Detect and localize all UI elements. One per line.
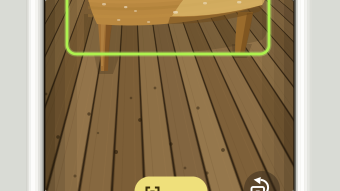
button[interactable]: Reset capture bbox=[244, 171, 280, 191]
button[interactable]: Scan object bbox=[134, 176, 207, 191]
